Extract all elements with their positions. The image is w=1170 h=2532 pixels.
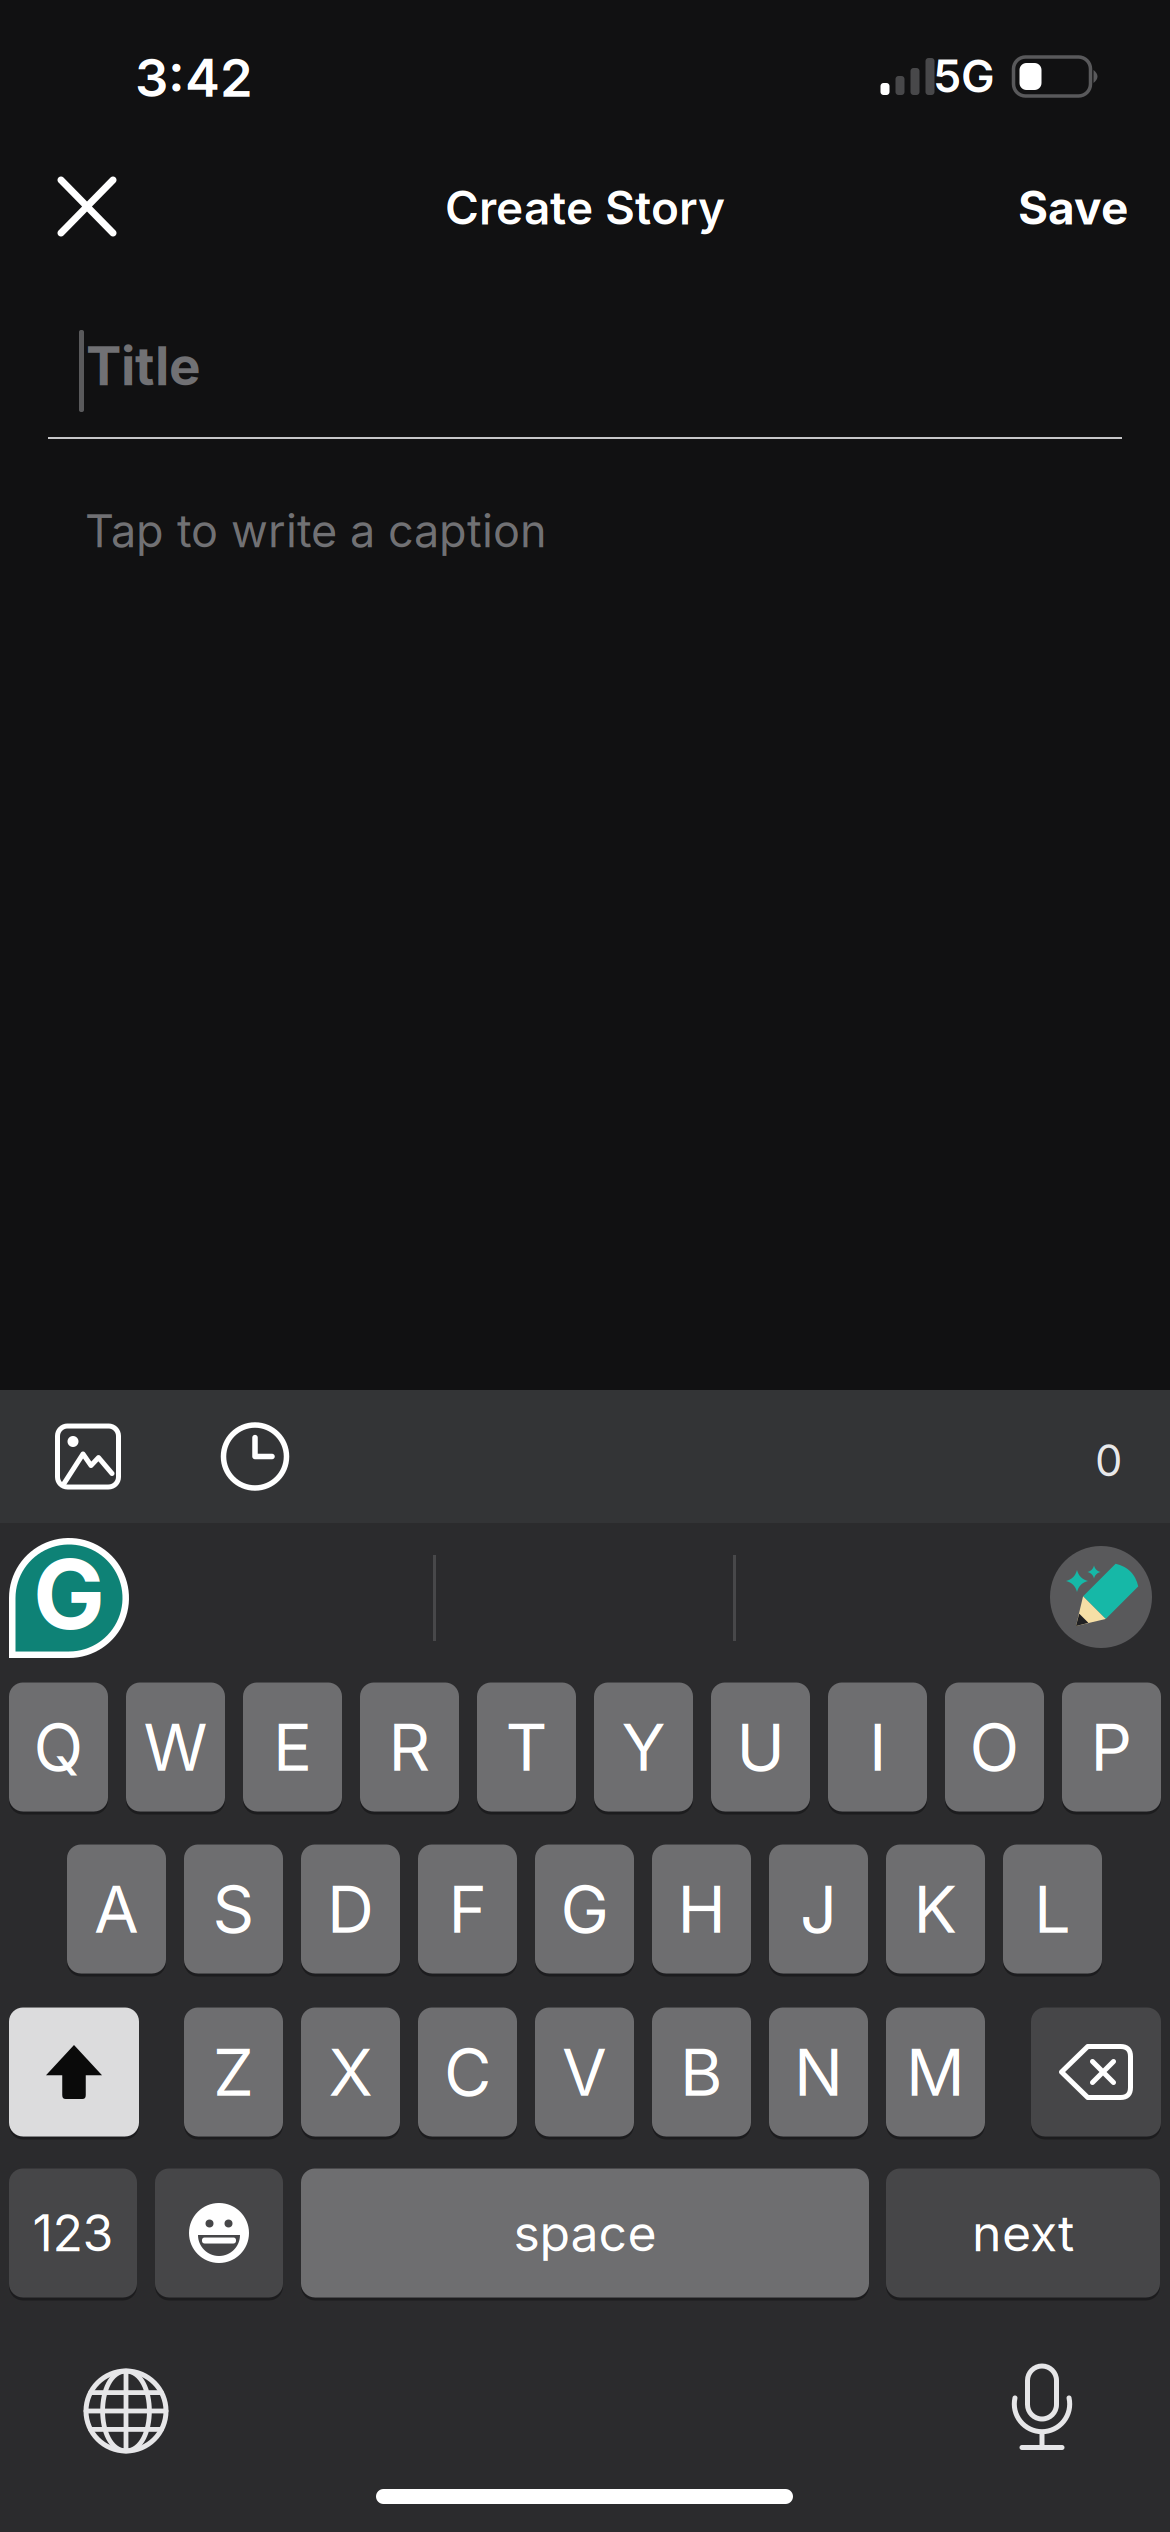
- staticText: P: [1090, 1708, 1132, 1786]
- staticText: D: [327, 1870, 374, 1948]
- staticText: G: [33, 1536, 105, 1652]
- staticText: A: [94, 1870, 139, 1948]
- staticText: 3:42: [135, 46, 253, 109]
- button[interactable]: Y: [594, 1681, 693, 1813]
- button[interactable]: Tap to write a caption: [85, 496, 1085, 566]
- staticText: Y: [621, 1708, 665, 1786]
- button[interactable]: Save: [1018, 180, 1128, 236]
- button[interactable]: V: [535, 2006, 634, 2138]
- staticText: Create Story: [445, 180, 725, 236]
- button[interactable]: Next keyboard: [74, 2359, 178, 2463]
- staticText: Save: [1018, 180, 1128, 236]
- button[interactable]: Grammarly writing suggestions: [1050, 1546, 1152, 1648]
- button[interactable]: Close: [44, 163, 130, 250]
- staticText: S: [212, 1870, 254, 1948]
- button[interactable]: D: [301, 1843, 400, 1975]
- button[interactable]: Grammarly: [9, 1538, 129, 1658]
- button[interactable]: S: [184, 1843, 283, 1975]
- staticText: Q: [33, 1708, 83, 1786]
- button[interactable]: Z: [184, 2006, 283, 2138]
- staticText: H: [677, 1870, 725, 1948]
- button[interactable]: Delete: [1031, 2006, 1161, 2138]
- button[interactable]: T: [477, 1681, 576, 1813]
- staticText: Tap to write a caption: [85, 504, 547, 558]
- staticText: space: [513, 2203, 656, 2263]
- button[interactable]: A: [67, 1843, 166, 1975]
- staticText: next: [972, 2203, 1074, 2263]
- staticText: C: [444, 2033, 491, 2111]
- staticText: T: [505, 1708, 547, 1786]
- button[interactable]: Dictate: [1002, 2354, 1082, 2462]
- button[interactable]: W: [126, 1681, 225, 1813]
- button[interactable]: O: [945, 1681, 1044, 1813]
- button[interactable]: next: [886, 2167, 1160, 2299]
- staticText: J: [800, 1870, 837, 1948]
- button[interactable]: Add photo: [42, 1390, 134, 1523]
- staticText: O: [969, 1708, 1019, 1786]
- staticText: 0: [1095, 1434, 1122, 1487]
- button[interactable]: K: [886, 1843, 985, 1975]
- staticText: W: [143, 1708, 207, 1786]
- staticText: 123: [32, 2203, 113, 2263]
- button[interactable]: E: [243, 1681, 342, 1813]
- button[interactable]: space: [301, 2167, 869, 2299]
- button[interactable]: I: [828, 1681, 927, 1813]
- button[interactable]: N: [769, 2006, 868, 2138]
- staticText: B: [680, 2033, 723, 2111]
- staticText: Z: [213, 2033, 254, 2111]
- button[interactable]: Shift: [9, 2006, 139, 2138]
- button[interactable]: M: [886, 2006, 985, 2138]
- button[interactable]: 123: [9, 2167, 137, 2299]
- staticText: R: [388, 1708, 430, 1786]
- button[interactable]: Q: [9, 1681, 108, 1813]
- staticText: I: [869, 1708, 886, 1786]
- staticText: X: [328, 2033, 372, 2111]
- button[interactable]: H: [652, 1843, 751, 1975]
- staticText: 5G: [933, 49, 995, 103]
- button[interactable]: Emoji: [155, 2167, 283, 2299]
- staticText: Title: [86, 334, 201, 398]
- button[interactable]: B: [652, 2006, 751, 2138]
- button[interactable]: P: [1062, 1681, 1161, 1813]
- staticText: K: [913, 1870, 957, 1948]
- staticText: F: [448, 1870, 486, 1948]
- staticText: E: [273, 1708, 312, 1786]
- staticText: M: [906, 2033, 965, 2111]
- staticText: L: [1034, 1870, 1071, 1948]
- button[interactable]: Schedule: [209, 1390, 301, 1523]
- button[interactable]: G: [535, 1843, 634, 1975]
- staticText: N: [794, 2033, 843, 2111]
- staticText: G: [560, 1870, 608, 1948]
- button[interactable]: F: [418, 1843, 517, 1975]
- button[interactable]: J: [769, 1843, 868, 1975]
- staticText: U: [736, 1708, 784, 1786]
- button[interactable]: U: [711, 1681, 810, 1813]
- button[interactable]: R: [360, 1681, 459, 1813]
- button[interactable]: X: [301, 2006, 400, 2138]
- button[interactable]: C: [418, 2006, 517, 2138]
- staticText: V: [562, 2033, 607, 2111]
- button[interactable]: L: [1003, 1843, 1102, 1975]
